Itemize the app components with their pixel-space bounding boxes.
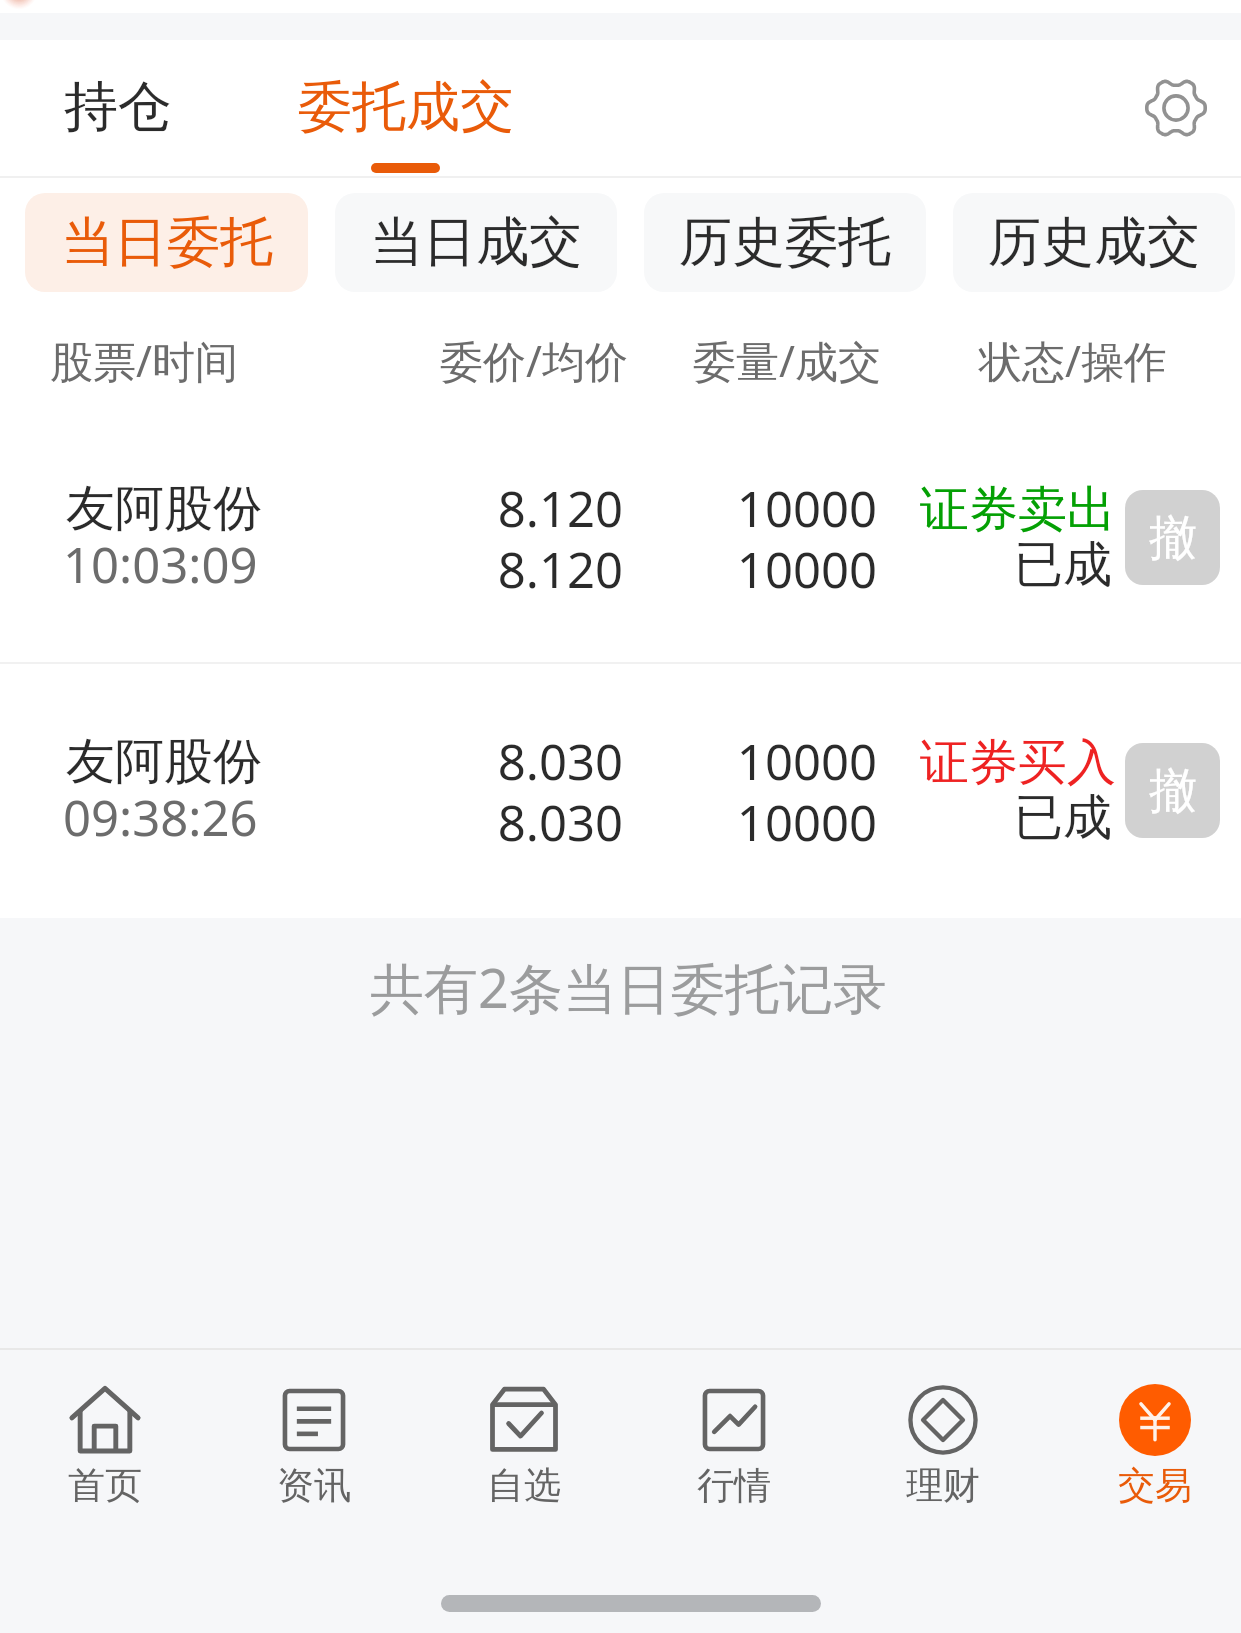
button[interactable]: 历史成交 [953, 193, 1235, 292]
button[interactable]: 友阿股份 [0, 673, 1241, 915]
staticText: 撤 [1149, 508, 1197, 568]
staticText: 委价/均价 [440, 331, 628, 390]
staticText: 8.030 [0, 728, 623, 795]
staticText: 10000 [0, 475, 877, 542]
staticText: 已成 [0, 787, 1112, 849]
button[interactable]: 撤 [1125, 490, 1220, 585]
staticText: 行情 [697, 1462, 771, 1509]
staticText: 已成 [0, 534, 1112, 596]
staticText: 状态/操作 [979, 331, 1167, 390]
staticText: 09:38:26 [63, 784, 258, 851]
button[interactable]: 当日委托 [25, 193, 308, 292]
staticText: 委托成交 [298, 73, 514, 141]
staticText: 撤 [1149, 761, 1197, 821]
staticText: 交易 [1118, 1462, 1192, 1509]
staticText: 自选 [487, 1462, 561, 1509]
staticText: 8.030 [0, 789, 623, 856]
button[interactable]: 行情 [644, 1384, 824, 1509]
staticText: 友阿股份 [66, 478, 262, 540]
staticText: 10000 [0, 536, 877, 603]
staticText: 持仓 [64, 73, 172, 141]
staticText: 历史委托 [679, 209, 891, 276]
button[interactable]: 理财 [853, 1384, 1033, 1509]
button[interactable]: 友阿股份 [0, 420, 1241, 662]
button[interactable]: 交易 [1065, 1384, 1241, 1509]
staticText: 10000 [0, 728, 877, 795]
staticText: 理财 [906, 1462, 980, 1509]
staticText: 资讯 [277, 1462, 351, 1509]
button[interactable]: 首页 [15, 1384, 195, 1509]
staticText: 8.120 [0, 475, 623, 542]
button[interactable]: 资讯 [224, 1384, 404, 1509]
button[interactable]: 持仓 [40, 57, 196, 157]
button[interactable]: 当日成交 [335, 193, 617, 292]
staticText: 共有2条当日委托记录 [370, 950, 887, 1024]
button[interactable]: 撤 [1125, 743, 1220, 838]
button[interactable]: 历史委托 [644, 193, 926, 292]
staticText: 首页 [68, 1462, 142, 1509]
staticText: 证券买入 [0, 732, 1116, 794]
button[interactable]: 委托成交 [274, 57, 538, 157]
button[interactable]: 自选 [434, 1384, 614, 1509]
staticText: 当日成交 [370, 209, 582, 276]
staticText: 10:03:09 [63, 531, 258, 598]
staticText: 证券卖出 [0, 479, 1116, 541]
button[interactable]: Settings [1121, 53, 1231, 163]
staticText: 10000 [0, 789, 877, 856]
staticText: 股票/时间 [50, 331, 238, 390]
staticText: 委量/成交 [693, 331, 881, 390]
staticText: 历史成交 [988, 209, 1200, 276]
staticText: 8.120 [0, 536, 623, 603]
staticText: 友阿股份 [66, 731, 262, 793]
staticText: 当日委托 [61, 209, 273, 276]
